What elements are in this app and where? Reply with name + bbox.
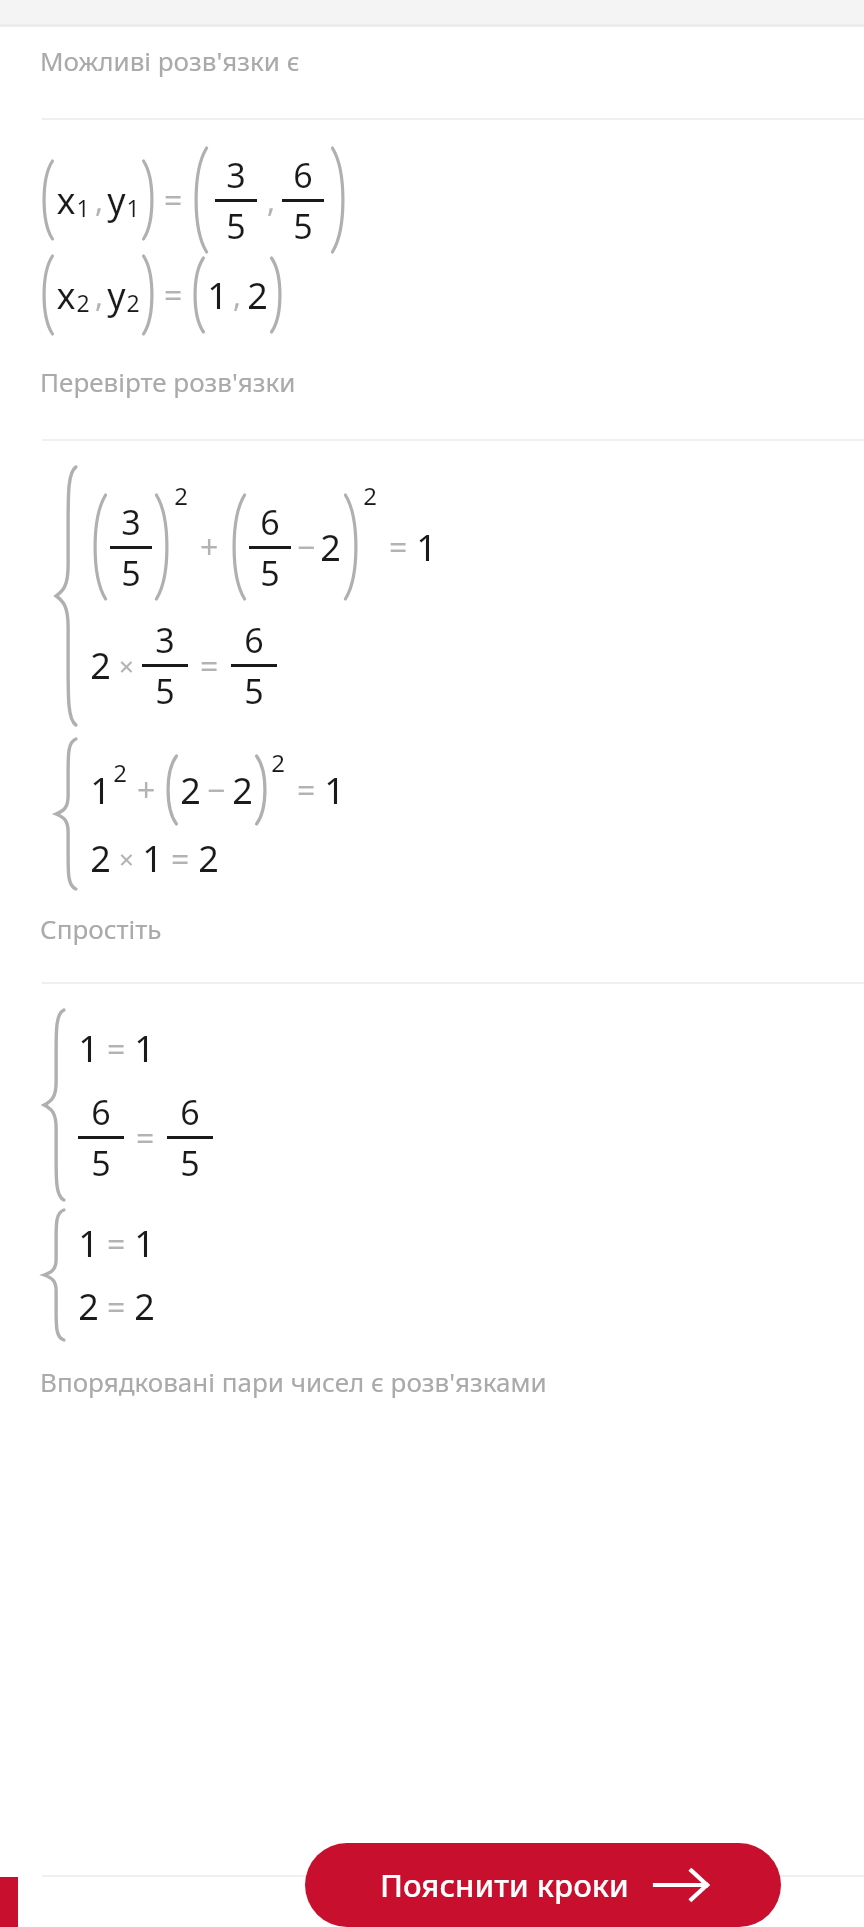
staticText: 2 xyxy=(78,1282,99,1331)
staticText: 6 xyxy=(260,499,280,545)
staticText: 2 xyxy=(180,766,201,815)
staticText: = xyxy=(297,768,316,812)
staticText: 1 xyxy=(90,766,111,815)
staticText: 2 xyxy=(134,1282,155,1331)
staticText: = xyxy=(389,525,408,569)
staticText: 3 xyxy=(121,499,141,545)
staticText: 2 xyxy=(76,287,90,318)
staticText: = xyxy=(107,1222,126,1266)
staticText: 2 xyxy=(232,766,253,815)
staticText: 5 xyxy=(155,668,175,714)
staticText: 2 xyxy=(363,479,377,512)
staticText: 1 xyxy=(126,192,140,223)
staticText: = xyxy=(107,1027,126,1071)
staticText: 2 xyxy=(126,287,140,318)
staticText: = xyxy=(136,1116,155,1160)
staticText: Пояснити кроки xyxy=(380,1864,629,1906)
staticText: , xyxy=(95,275,104,316)
staticText: 2 xyxy=(113,756,127,789)
staticText: , xyxy=(95,180,104,221)
staticText: + xyxy=(137,768,156,812)
staticText: 5 xyxy=(244,668,264,714)
staticText: x xyxy=(56,176,76,225)
staticText: , xyxy=(267,180,276,221)
staticText: 1 xyxy=(134,1219,155,1268)
staticText: 5 xyxy=(226,203,246,249)
staticText: Спростіть xyxy=(40,911,162,946)
staticText: 5 xyxy=(121,550,141,596)
staticText: 3 xyxy=(226,152,246,198)
staticText: 2 xyxy=(174,479,188,512)
other: Next xyxy=(655,1868,707,1902)
staticText: 1 xyxy=(416,523,437,572)
staticText: 5 xyxy=(180,1140,200,1186)
staticText: 1 xyxy=(134,1024,155,1073)
staticText: = xyxy=(200,644,219,688)
staticText: − xyxy=(207,768,226,812)
staticText: 5 xyxy=(260,550,280,596)
staticText: 2 xyxy=(247,271,268,320)
staticText: 6 xyxy=(293,152,313,198)
button[interactable]: Пояснити кроки xyxy=(305,1843,781,1927)
staticText: + xyxy=(200,525,219,569)
staticText: × xyxy=(119,841,134,876)
staticText: 1 xyxy=(76,192,90,223)
staticText: 2 xyxy=(90,834,111,883)
staticText: y xyxy=(107,271,126,320)
staticText: 1 xyxy=(78,1219,99,1268)
staticText: 2 xyxy=(90,641,111,690)
staticText: 5 xyxy=(91,1140,111,1186)
staticText: 1 xyxy=(207,271,228,320)
staticText: 2 xyxy=(198,834,219,883)
staticText: − xyxy=(297,525,316,569)
staticText: y xyxy=(107,176,126,225)
staticText: 6 xyxy=(244,617,264,663)
staticText: = xyxy=(107,1285,126,1329)
staticText: 6 xyxy=(180,1089,200,1135)
staticText: Перевірте розв'язки xyxy=(40,364,296,399)
staticText: = xyxy=(164,178,183,222)
staticText: = xyxy=(171,837,190,881)
staticText: Впорядковані пари чисел є розв'язками xyxy=(40,1364,547,1399)
staticText: Можливі розв'язки є xyxy=(40,43,300,78)
staticText: 5 xyxy=(293,203,313,249)
staticText: 1 xyxy=(78,1024,99,1073)
staticText: 1 xyxy=(142,834,163,883)
staticText: 2 xyxy=(271,746,285,779)
staticText: × xyxy=(119,648,134,683)
staticText: 2 xyxy=(320,523,341,572)
staticText: x xyxy=(56,271,76,320)
staticText: 6 xyxy=(91,1089,111,1135)
staticText: 3 xyxy=(155,617,175,663)
staticText: 1 xyxy=(324,766,345,815)
staticText: , xyxy=(233,275,242,316)
staticText: = xyxy=(164,273,183,317)
